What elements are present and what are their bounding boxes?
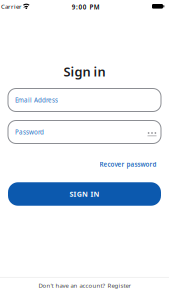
staticText: 9:00 PM bbox=[72, 3, 100, 11]
button[interactable]: Password bbox=[8, 120, 161, 143]
staticText: Email Address bbox=[15, 96, 58, 104]
button[interactable]: Recover password bbox=[99, 160, 156, 168]
button[interactable]: SIGN IN bbox=[8, 182, 161, 206]
staticText: Carrier bbox=[1, 2, 22, 11]
staticText: Sign in bbox=[63, 63, 105, 80]
staticText: SIGN IN bbox=[69, 189, 100, 199]
staticText: Don't have an account? Register bbox=[38, 281, 130, 289]
staticText: Recover password bbox=[99, 160, 156, 168]
button[interactable]: Don't have an account? Register bbox=[38, 281, 130, 289]
button[interactable]: Email Address bbox=[8, 88, 161, 111]
staticText: Password bbox=[15, 128, 44, 136]
